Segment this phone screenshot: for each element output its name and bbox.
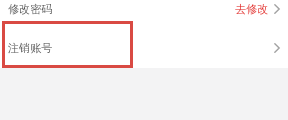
other: Change password bbox=[274, 4, 280, 14]
button[interactable]: 注销账号 bbox=[0, 29, 288, 68]
staticText: 注销账号 bbox=[8, 41, 53, 55]
staticText: 修改密码 bbox=[8, 2, 53, 16]
other: Delete account bbox=[274, 43, 280, 53]
staticText: 去修改 bbox=[235, 2, 269, 16]
button[interactable]: 去修改 bbox=[235, 0, 288, 23]
button[interactable]: 修改密码 bbox=[0, 0, 288, 29]
